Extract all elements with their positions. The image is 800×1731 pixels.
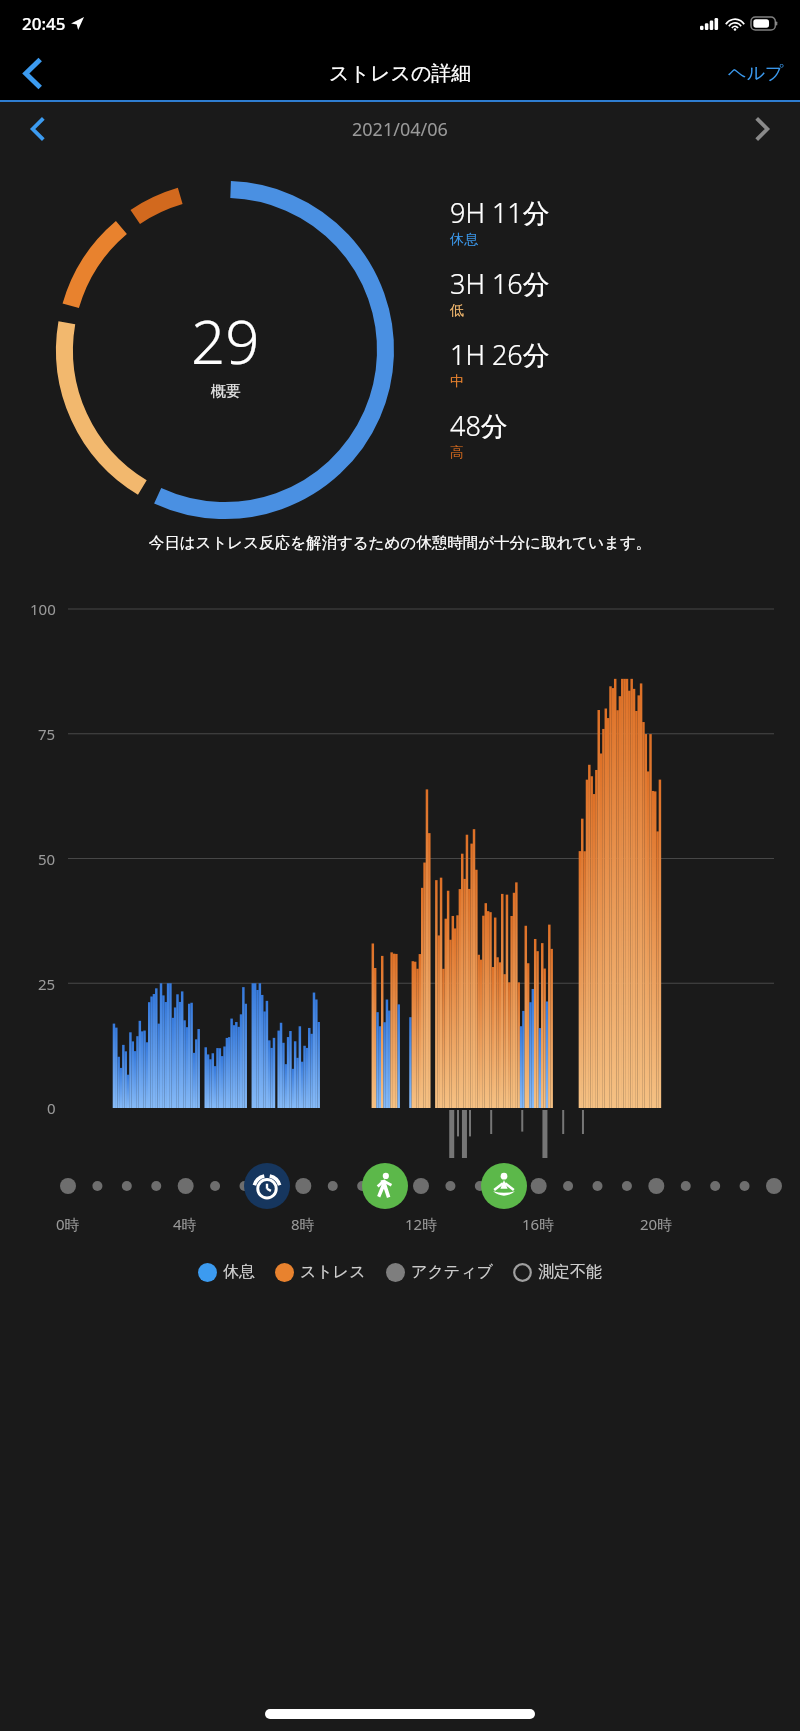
button[interactable]: ヘルプ xyxy=(712,47,800,100)
staticText: ストレス xyxy=(300,1262,366,1282)
staticText: 2021/04/06 xyxy=(352,117,448,142)
staticText: 今日はストレス反応を解消するための休憩時間が十分に取れています。 xyxy=(8,533,792,553)
staticText: 20:45 xyxy=(22,12,66,35)
staticText: 50 xyxy=(38,849,56,869)
staticText: 休息 xyxy=(223,1262,255,1282)
button[interactable]: Breathing marker xyxy=(481,1163,527,1209)
button[interactable]: Previous day xyxy=(0,102,76,156)
staticText: アクティブ xyxy=(411,1262,493,1282)
staticText: 12時 xyxy=(405,1214,438,1234)
staticText: 低 xyxy=(450,302,464,320)
staticText: 概要 xyxy=(211,382,241,401)
button[interactable]: Walk marker xyxy=(362,1163,408,1209)
staticText: 16時 xyxy=(522,1214,555,1234)
button[interactable]: Sleep marker xyxy=(244,1163,290,1209)
staticText: ストレスの詳細 xyxy=(329,61,472,86)
staticText: 29 xyxy=(191,300,260,382)
staticText: 48分 xyxy=(450,407,508,444)
staticText: 20時 xyxy=(640,1214,673,1234)
button[interactable]: 3H 16分 xyxy=(450,265,550,320)
staticText: 8時 xyxy=(291,1214,315,1234)
staticText: 9H 11分 xyxy=(450,194,550,231)
staticText: 1H 26分 xyxy=(450,336,550,373)
staticText: 高 xyxy=(450,444,464,462)
button[interactable]: 測定不能 xyxy=(513,1262,602,1282)
staticText: 休息 xyxy=(450,231,478,249)
staticText: 0時 xyxy=(56,1214,80,1234)
button[interactable]: 休息 xyxy=(198,1262,255,1282)
button[interactable]: 9H 11分 xyxy=(450,194,550,249)
staticText: 4時 xyxy=(173,1214,197,1234)
staticText: ヘルプ xyxy=(728,62,784,85)
staticText: 測定不能 xyxy=(538,1262,602,1282)
button[interactable]: ストレス xyxy=(275,1262,366,1282)
staticText: 0 xyxy=(47,1098,56,1118)
button[interactable]: 48分 xyxy=(450,407,508,462)
button[interactable]: アクティブ xyxy=(386,1262,493,1282)
staticText: 75 xyxy=(38,724,56,744)
button[interactable]: Next day xyxy=(724,102,800,156)
staticText: 3H 16分 xyxy=(450,265,550,302)
staticText: 100 xyxy=(30,599,56,619)
staticText: 中 xyxy=(450,373,464,391)
button[interactable]: 1H 26分 xyxy=(450,336,550,391)
button[interactable]: Back xyxy=(0,47,66,100)
staticText: 25 xyxy=(38,974,56,994)
